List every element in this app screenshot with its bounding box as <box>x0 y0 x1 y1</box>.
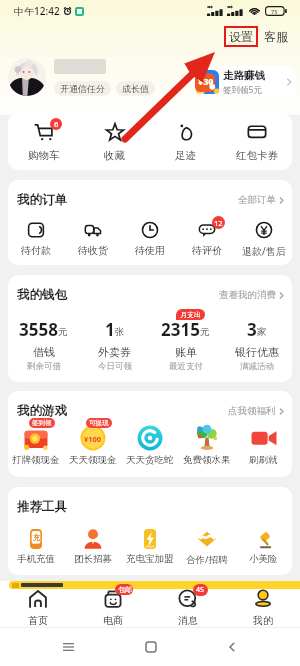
button[interactable]: 6 <box>8 123 79 162</box>
staticText: 包邮 <box>118 585 130 594</box>
staticText: 签到领 <box>32 419 52 427</box>
staticText: 天天贪吃蛇 <box>126 454 174 466</box>
staticText: 待收货 <box>78 244 108 257</box>
staticText: 天天领现金 <box>69 454 117 466</box>
staticText: 借钱 <box>33 345 55 359</box>
staticText: 小美险 <box>249 553 278 565</box>
button[interactable]: 3558 <box>8 318 79 372</box>
staticText: 设置 <box>229 29 253 44</box>
button[interactable]: 2315 <box>150 318 221 372</box>
button[interactable]: 12 <box>178 222 235 257</box>
staticText: 剩余可借 <box>27 361 61 372</box>
staticText: 3558 <box>19 318 58 341</box>
staticText: 签到领5元 <box>223 84 262 96</box>
staticText: 购物车 <box>28 149 60 162</box>
staticText: 我的钱包 <box>17 287 67 303</box>
staticText: 中午12:42 <box>14 4 60 18</box>
button[interactable]: 查看我的消费 <box>219 287 285 303</box>
staticText: 打牌领现金 <box>12 454 60 466</box>
button[interactable]: 全部订单 <box>238 192 285 208</box>
staticText: 待评价 <box>192 244 222 257</box>
button[interactable]: 充电宝加盟 <box>121 529 178 565</box>
button[interactable]: 免费领水果 <box>178 425 235 466</box>
button[interactable]: Back <box>219 634 245 660</box>
staticText: 75 <box>271 8 278 15</box>
staticText: 手机充值 <box>17 553 55 565</box>
button[interactable]: 红包卡券 <box>221 123 292 162</box>
button[interactable]: 团长招募 <box>64 529 121 565</box>
staticText: 免费领水果 <box>183 454 231 466</box>
button[interactable]: 头像 <box>8 58 46 96</box>
staticText: 全部订单 <box>238 194 276 206</box>
staticText: 充电宝加盟 <box>126 553 174 565</box>
button[interactable] <box>9 581 300 589</box>
staticText: 待使用 <box>135 244 165 257</box>
staticText: 3 <box>247 318 257 341</box>
button[interactable]: 包邮 <box>75 590 150 627</box>
staticText: 充 <box>33 533 40 542</box>
button[interactable]: 合作/招聘 <box>178 529 235 566</box>
button[interactable]: 首页 <box>0 590 75 627</box>
staticText: 消息 <box>178 614 198 627</box>
button[interactable]: 待收货 <box>64 222 121 257</box>
staticText: 我的 <box>253 614 273 627</box>
button[interactable]: 我的 <box>225 590 300 627</box>
staticText: 银行优惠 <box>235 345 279 359</box>
button[interactable]: 充 <box>8 529 64 565</box>
button[interactable]: 收藏 <box>79 123 150 162</box>
staticText: 待付款 <box>21 244 51 257</box>
staticText: 合作/招聘 <box>186 553 228 566</box>
button[interactable]: Home <box>138 634 164 660</box>
staticText: 家 <box>257 326 267 338</box>
staticText: ¥100 <box>84 434 102 444</box>
staticText: 足迹 <box>175 149 196 162</box>
staticText: 开通信任分 <box>60 83 105 94</box>
staticText: 推荐工具 <box>17 499 67 515</box>
staticText: 成长值 <box>122 83 149 94</box>
staticText: 满减活动 <box>240 361 274 372</box>
staticText: 查看我的消费 <box>219 289 276 301</box>
button[interactable]: 天天贪吃蛇 <box>121 425 178 466</box>
staticText: 12 <box>214 218 223 228</box>
staticText: 2315 <box>161 318 200 341</box>
button[interactable]: 足迹 <box>150 123 221 162</box>
button[interactable]: ¥100 <box>64 425 121 466</box>
staticText: 点我领福利 <box>228 405 276 417</box>
button[interactable]: 点我领福利 <box>228 403 285 419</box>
button[interactable]: 设置 <box>224 26 258 47</box>
staticText: 走路赚钱 <box>223 69 265 82</box>
staticText: 我的游戏 <box>17 403 67 419</box>
staticText: 刷刷就 <box>249 454 278 466</box>
staticText: 首页 <box>28 614 48 627</box>
staticText: 团长招募 <box>74 553 112 565</box>
staticText: 1 <box>105 318 115 341</box>
button[interactable]: Recents <box>55 635 82 659</box>
staticText: 外卖券 <box>98 345 131 359</box>
staticText: 最近支付 <box>169 361 203 372</box>
button[interactable]: 刷刷就 <box>235 425 292 466</box>
staticText: 收藏 <box>104 149 125 162</box>
button[interactable]: 客服 <box>262 25 290 48</box>
staticText: 可提现 <box>89 419 109 427</box>
button[interactable]: 45 <box>150 590 225 627</box>
staticText: 红包卡券 <box>236 149 278 162</box>
button[interactable]: 成长值 <box>116 81 155 96</box>
staticText: ¥30 <box>198 75 214 87</box>
button[interactable]: 待使用 <box>121 222 178 257</box>
button[interactable]: 1 <box>79 318 150 372</box>
staticText: 今日可领 <box>98 361 132 372</box>
button[interactable]: 签到领 <box>8 425 64 466</box>
staticText: 45 <box>196 585 205 595</box>
button[interactable]: 待付款 <box>8 222 64 257</box>
staticText: 6 <box>54 119 59 129</box>
staticText: 账单 <box>175 345 197 359</box>
button[interactable]: 退款/售后 <box>235 222 292 258</box>
staticText: 元 <box>200 326 210 338</box>
staticText: 退款/售后 <box>242 244 286 258</box>
button[interactable]: 3 <box>221 318 292 372</box>
button[interactable]: 小美险 <box>235 529 292 565</box>
button[interactable]: ¥30 <box>191 66 296 98</box>
staticText: 月支出 <box>180 310 201 319</box>
button[interactable]: 开通信任分 <box>54 81 111 96</box>
staticText: 张 <box>115 326 125 338</box>
